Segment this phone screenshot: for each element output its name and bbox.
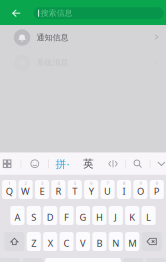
staticText: 2 — [25, 181, 27, 186]
staticText: Q — [6, 185, 13, 197]
button[interactable]: 拼· — [49, 153, 76, 175]
button[interactable]: Search — [126, 153, 150, 175]
staticText: B — [96, 237, 102, 249]
button[interactable]: 英 — [76, 153, 101, 175]
button[interactable] — [109, 206, 123, 225]
button[interactable] — [92, 206, 106, 225]
button[interactable] — [142, 206, 156, 225]
staticText: O — [137, 185, 144, 197]
staticText: 8 — [123, 181, 125, 186]
staticText: 6 — [90, 181, 92, 186]
button[interactable]: 6 — [84, 180, 98, 199]
staticText: H — [96, 211, 103, 223]
button[interactable]: Back — [4, 1, 28, 25]
staticText: 9 — [139, 181, 141, 186]
staticText: V — [80, 237, 86, 249]
staticText: W — [21, 185, 30, 197]
staticText: P — [154, 185, 160, 197]
staticText: 3 — [41, 181, 43, 186]
button[interactable] — [125, 232, 139, 251]
button[interactable]: 5 — [68, 180, 82, 199]
staticText: I — [122, 185, 125, 197]
staticText: 1 — [8, 181, 10, 186]
staticText: 0 — [156, 181, 158, 186]
staticText: Y — [89, 185, 94, 197]
button[interactable] — [43, 232, 57, 251]
button[interactable]: 8 — [117, 180, 131, 199]
button[interactable]: Move cursor — [101, 153, 125, 175]
button[interactable]: 3 — [35, 180, 49, 199]
staticText: U — [104, 185, 111, 197]
button[interactable] — [76, 206, 90, 225]
button[interactable] — [109, 232, 123, 251]
button[interactable] — [43, 206, 57, 225]
button[interactable]: 1 — [2, 180, 16, 199]
button[interactable] — [76, 232, 90, 251]
button[interactable]: Keyboard layouts — [0, 153, 21, 175]
button[interactable] — [27, 206, 41, 225]
button[interactable]: Shift — [4, 232, 24, 251]
staticText: J — [114, 211, 117, 223]
staticText: 拼· — [55, 157, 69, 171]
staticText: E — [39, 185, 44, 197]
staticText: L — [146, 211, 151, 223]
staticText: F — [64, 211, 69, 223]
staticText: X — [48, 237, 53, 249]
staticText: 英 — [83, 157, 94, 170]
staticText: 通知信息 — [36, 33, 68, 42]
staticText: Z — [31, 237, 36, 249]
staticText: 5 — [74, 181, 76, 186]
button[interactable]: 0 — [150, 180, 164, 199]
button[interactable] — [125, 206, 139, 225]
button[interactable]: 9 — [133, 180, 147, 199]
staticText: R — [55, 185, 61, 197]
staticText: M — [128, 237, 136, 249]
staticText: 搜索信息 — [40, 8, 72, 18]
button[interactable]: 7 — [101, 180, 115, 199]
staticText: T — [72, 185, 77, 197]
button[interactable] — [92, 232, 106, 251]
button[interactable]: 2 — [19, 180, 33, 199]
staticText: 7 — [107, 181, 109, 186]
staticText: S — [31, 211, 36, 223]
button[interactable]: Hide keyboard — [150, 153, 166, 175]
button[interactable] — [60, 206, 74, 225]
button[interactable]: 通知信息 — [0, 25, 166, 50]
button[interactable]: Emoji — [21, 153, 48, 175]
button[interactable] — [10, 206, 24, 225]
button[interactable] — [60, 232, 74, 251]
button[interactable]: Backspace — [142, 232, 162, 251]
staticText: 系统消息 — [36, 58, 68, 67]
staticText: A — [14, 211, 20, 223]
button[interactable] — [27, 232, 41, 251]
staticText: 4 — [57, 181, 59, 186]
button[interactable]: 搜索信息 — [34, 7, 164, 19]
staticText: G — [79, 211, 86, 223]
staticText: N — [112, 237, 119, 249]
button[interactable]: 4 — [51, 180, 65, 199]
staticText: C — [64, 237, 70, 249]
staticText: D — [47, 211, 54, 223]
